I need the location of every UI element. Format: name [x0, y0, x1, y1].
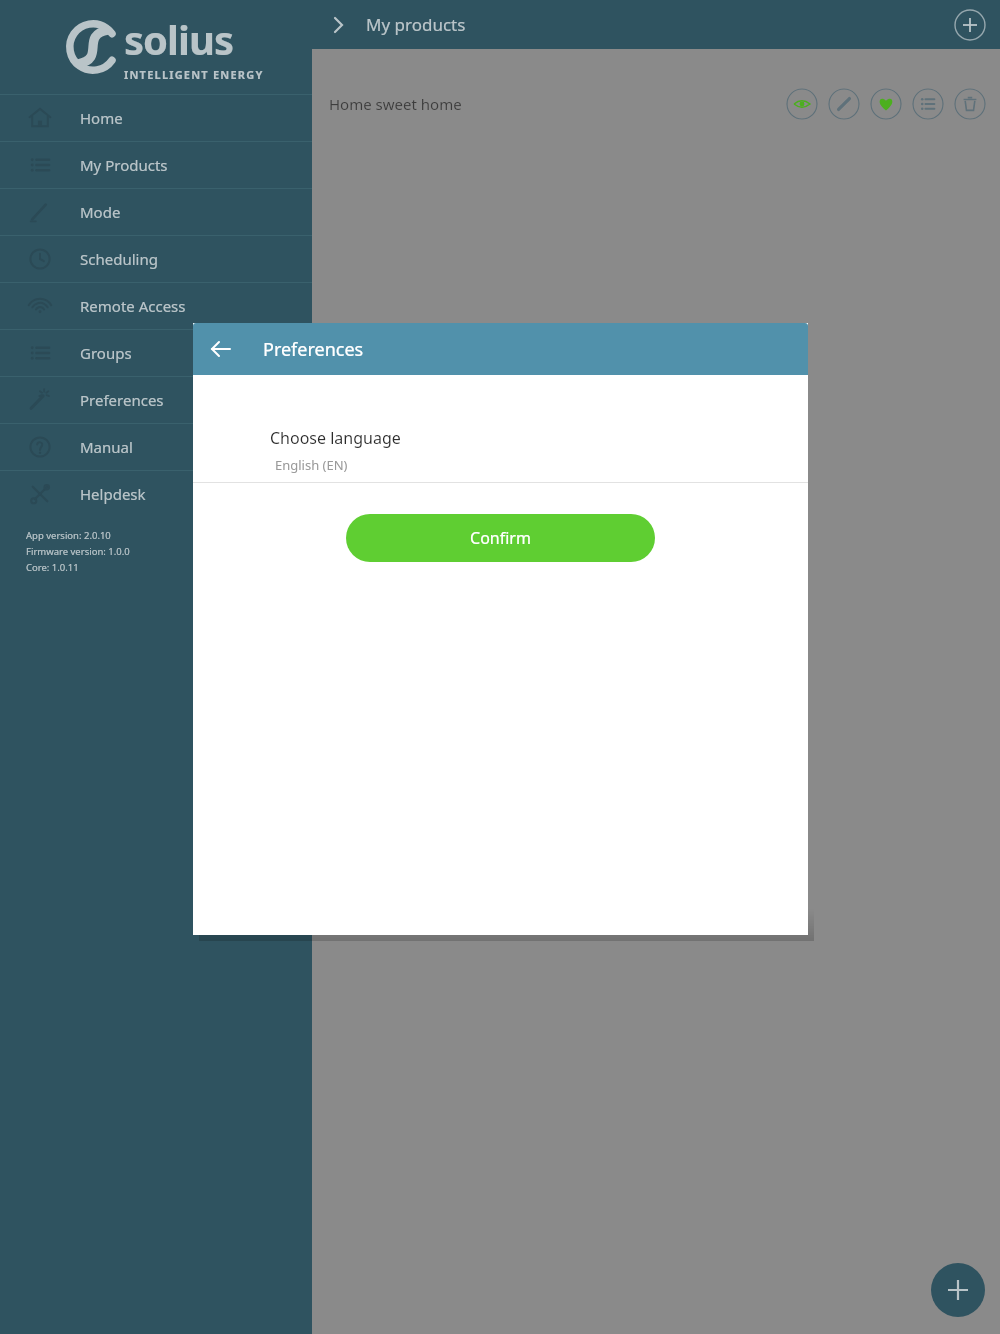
staticText: Choose language: [270, 427, 401, 449]
staticText: Helpdesk: [80, 484, 146, 504]
button[interactable]: Mode: [0, 189, 312, 235]
staticText: Preferences: [80, 390, 164, 410]
button[interactable]: Choose language: [193, 427, 808, 483]
button[interactable]: Expand menu: [320, 7, 356, 43]
button[interactable]: Favourite: [870, 88, 902, 120]
staticText: Home: [80, 108, 123, 128]
staticText: Confirm: [470, 527, 531, 549]
staticText: App version: 2.0.10: [26, 529, 111, 542]
button[interactable]: Helpdesk: [0, 471, 312, 517]
button[interactable]: Scheduling: [0, 236, 312, 282]
button[interactable]: Details: [912, 88, 944, 120]
button[interactable]: Groups: [0, 330, 312, 376]
staticText: My Products: [80, 155, 168, 175]
button[interactable]: Add product: [952, 7, 988, 43]
button[interactable]: My Products: [0, 142, 312, 188]
staticText: Preferences: [263, 337, 364, 362]
staticText: My products: [366, 13, 466, 36]
button[interactable]: Preferences: [0, 377, 312, 423]
staticText: Firmware version: 1.0.0: [26, 545, 130, 558]
staticText: Core: 1.0.11: [26, 561, 79, 574]
staticText: Mode: [80, 202, 121, 222]
staticText: INTELLIGENT ENERGY: [124, 67, 264, 82]
button[interactable]: Home: [0, 95, 312, 141]
button[interactable]: Add: [931, 1263, 985, 1317]
staticText: Groups: [80, 343, 132, 363]
button[interactable]: Back: [204, 332, 238, 366]
staticText: Home sweet home: [329, 94, 462, 114]
staticText: Manual: [80, 437, 133, 457]
button[interactable]: Delete: [954, 88, 986, 120]
button[interactable]: Edit: [828, 88, 860, 120]
button[interactable]: Confirm: [346, 514, 655, 562]
staticText: Scheduling: [80, 249, 158, 269]
button[interactable]: Remote Access: [0, 283, 312, 329]
staticText: Remote Access: [80, 296, 186, 316]
button[interactable]: View: [786, 88, 818, 120]
staticText: English (EN): [275, 456, 348, 474]
staticText: solius: [124, 12, 234, 66]
button[interactable]: Manual: [0, 424, 312, 470]
